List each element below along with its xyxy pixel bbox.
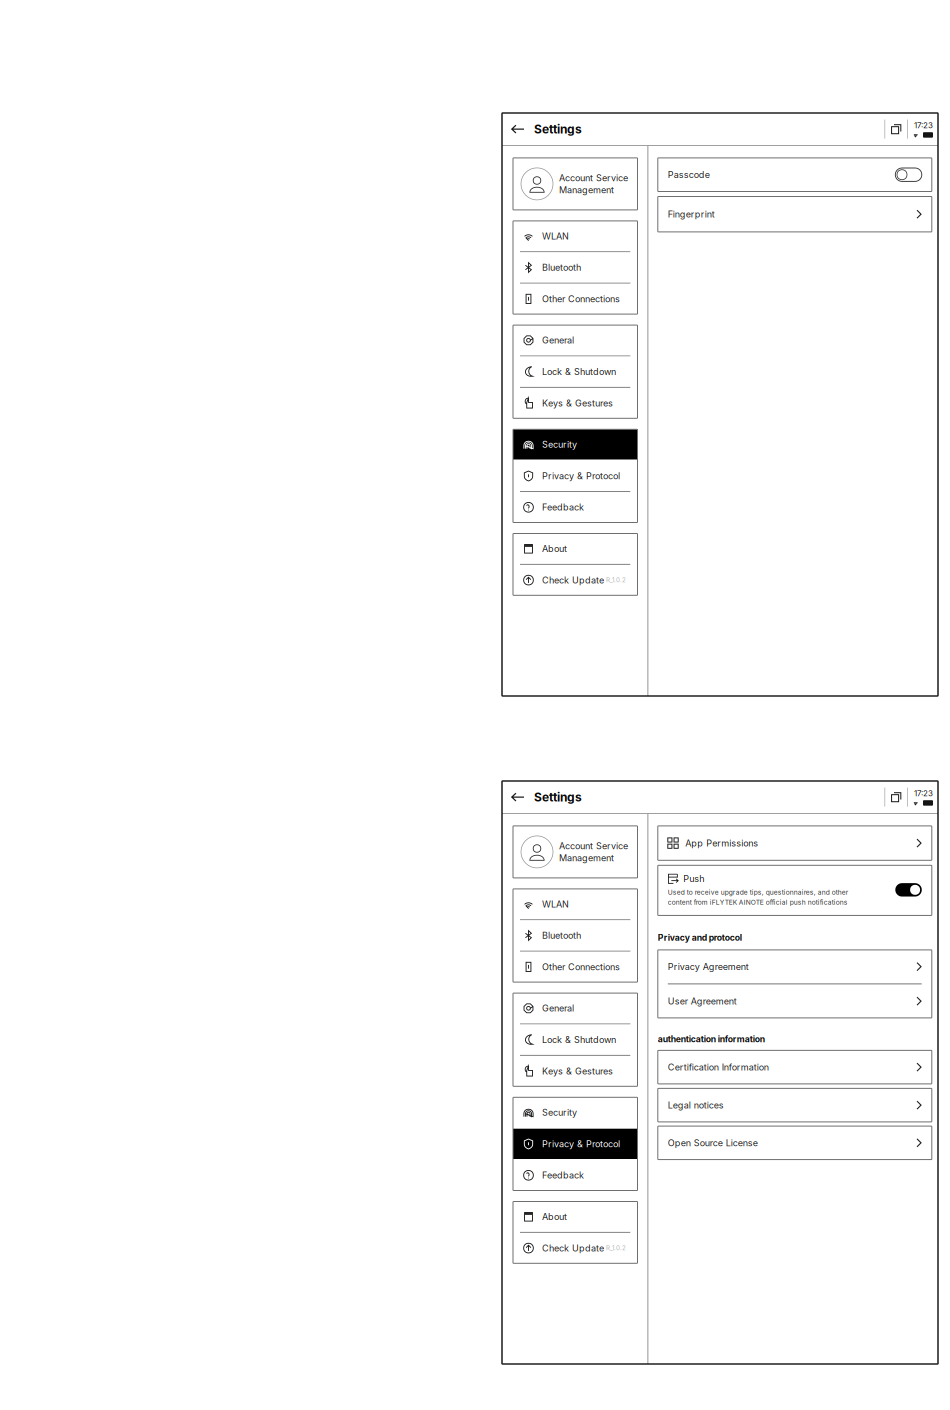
button[interactable]: Recent windows [885, 781, 907, 813]
staticText: Certification Information [668, 1062, 769, 1073]
staticText: 17:23 [914, 120, 933, 130]
staticText: Security [542, 1107, 577, 1118]
button[interactable]: Passcode [658, 158, 932, 191]
staticText: User Agreement [668, 996, 737, 1007]
button[interactable]: Account Service [513, 158, 637, 210]
staticText: R_1.0.2 [606, 576, 626, 584]
staticText: Bluetooth [542, 262, 581, 273]
button[interactable]: Back [502, 113, 534, 145]
button[interactable]: About [513, 533, 637, 564]
staticText: Management [559, 184, 614, 195]
button[interactable]: General [513, 993, 637, 1023]
staticText: Push [683, 873, 704, 884]
staticText: Lock & Shutdown [542, 1034, 616, 1045]
button[interactable]: Bluetooth [513, 252, 637, 283]
staticText: Passcode [668, 169, 710, 180]
button[interactable]: User Agreement [658, 984, 932, 1018]
staticText: Management [559, 852, 614, 863]
staticText: authentication information [658, 1034, 765, 1044]
button[interactable]: Security [513, 1097, 637, 1128]
button[interactable]: Keys & Gestures [513, 388, 637, 418]
staticText: Privacy and protocol [658, 932, 742, 943]
button[interactable]: Lock & Shutdown [513, 1024, 637, 1055]
button[interactable]: Other Connections [513, 284, 637, 314]
staticText: Account Service [559, 840, 628, 851]
button[interactable]: Keys & Gestures [513, 1056, 637, 1086]
staticText: Keys & Gestures [542, 1066, 613, 1077]
button[interactable]: About [513, 1201, 637, 1232]
button[interactable]: Other Connections [513, 952, 637, 982]
staticText: Security [542, 439, 577, 450]
button[interactable]: Lock & Shutdown [513, 356, 637, 387]
button[interactable]: Feedback [513, 1160, 637, 1190]
staticText: 17:23 [914, 788, 933, 798]
staticText: Privacy & Protocol [542, 1138, 620, 1149]
staticText: Keys & Gestures [542, 398, 613, 409]
button[interactable]: Account Service [513, 826, 637, 878]
staticText: Feedback [542, 502, 584, 513]
button[interactable]: Feedback [513, 492, 637, 522]
staticText: General [542, 335, 574, 346]
staticText: Bluetooth [542, 930, 581, 941]
button[interactable]: Fingerprint [658, 196, 932, 232]
staticText: R_1.0.2 [606, 1244, 626, 1252]
staticText: App Permissions [685, 838, 758, 849]
staticText: Account Service [559, 172, 628, 183]
button[interactable]: Check Update [513, 1233, 637, 1263]
button[interactable]: Check Update [513, 565, 637, 595]
staticText: Check Update [542, 575, 604, 586]
button[interactable]: Privacy & Protocol [513, 1129, 637, 1159]
button[interactable]: Security [513, 429, 637, 460]
staticText: Fingerprint [668, 209, 715, 220]
button[interactable]: Back [502, 781, 534, 813]
staticText: WLAN [542, 231, 569, 242]
button[interactable]: Legal notices [658, 1088, 932, 1122]
staticText: Other Connections [542, 293, 620, 304]
staticText: Other Connections [542, 961, 620, 972]
staticText: Privacy Agreement [668, 961, 749, 972]
staticText: About [542, 543, 567, 554]
staticText: Privacy & Protocol [542, 470, 620, 481]
staticText: General [542, 1003, 574, 1014]
staticText: Feedback [542, 1170, 584, 1181]
button[interactable]: App Permissions [658, 826, 932, 860]
button[interactable]: Open Source License [658, 1126, 932, 1160]
staticText: Lock & Shutdown [542, 366, 616, 377]
staticText: content from iFLYTEK AINOTE official pus… [668, 898, 848, 906]
button[interactable]: WLAN [513, 889, 637, 919]
button[interactable]: Privacy Agreement [658, 950, 932, 983]
button[interactable]: Certification Information [658, 1050, 932, 1084]
staticText: Open Source License [668, 1137, 758, 1148]
button[interactable]: Privacy & Protocol [513, 461, 637, 491]
button[interactable]: Bluetooth [513, 920, 637, 951]
staticText: WLAN [542, 899, 569, 910]
staticText: Settings [534, 122, 582, 136]
button[interactable]: Recent windows [885, 113, 907, 145]
staticText: Settings [534, 790, 582, 804]
button[interactable]: General [513, 325, 637, 355]
staticText: Used to receive upgrade tips, questionna… [668, 888, 849, 896]
staticText: Legal notices [668, 1100, 724, 1111]
staticText: Check Update [542, 1243, 604, 1254]
staticText: About [542, 1211, 567, 1222]
button[interactable]: WLAN [513, 221, 637, 251]
